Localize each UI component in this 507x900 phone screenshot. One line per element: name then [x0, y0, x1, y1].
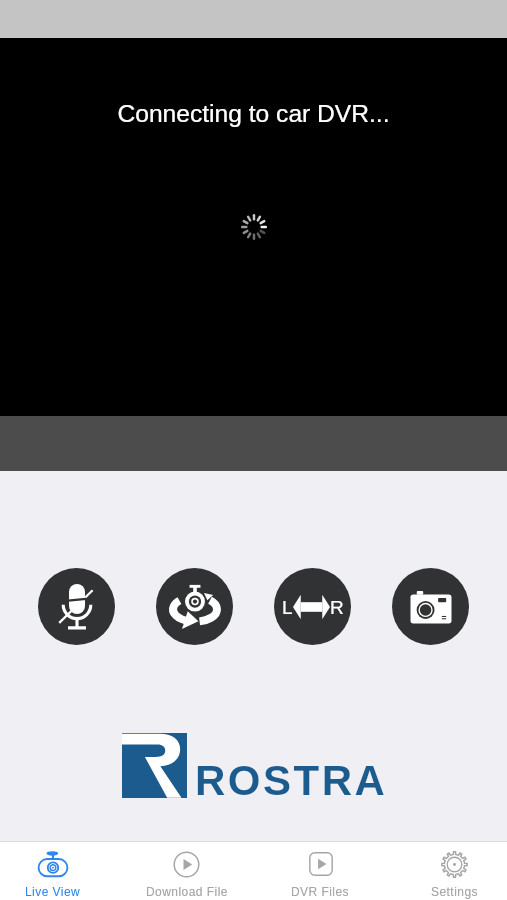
- button[interactable]: DVR Files: [268, 842, 373, 900]
- staticText: L: [282, 597, 293, 618]
- staticText: Live View: [25, 885, 81, 898]
- button[interactable]: Swap left and right camera: [274, 568, 351, 645]
- staticText: R: [330, 597, 344, 618]
- button[interactable]: Settings: [402, 842, 507, 900]
- button[interactable]: Mute microphone: [38, 568, 115, 645]
- staticText: Download File: [146, 885, 228, 898]
- staticText: ROSTRA: [195, 757, 388, 804]
- staticText: Settings: [431, 885, 478, 898]
- button[interactable]: Live View: [0, 842, 105, 900]
- button[interactable]: Take photo: [392, 568, 469, 645]
- button[interactable]: Download File: [134, 842, 239, 900]
- staticText: DVR Files: [291, 885, 350, 898]
- staticText: Connecting to car DVR...: [0, 100, 507, 127]
- button[interactable]: Switch camera: [156, 568, 233, 645]
